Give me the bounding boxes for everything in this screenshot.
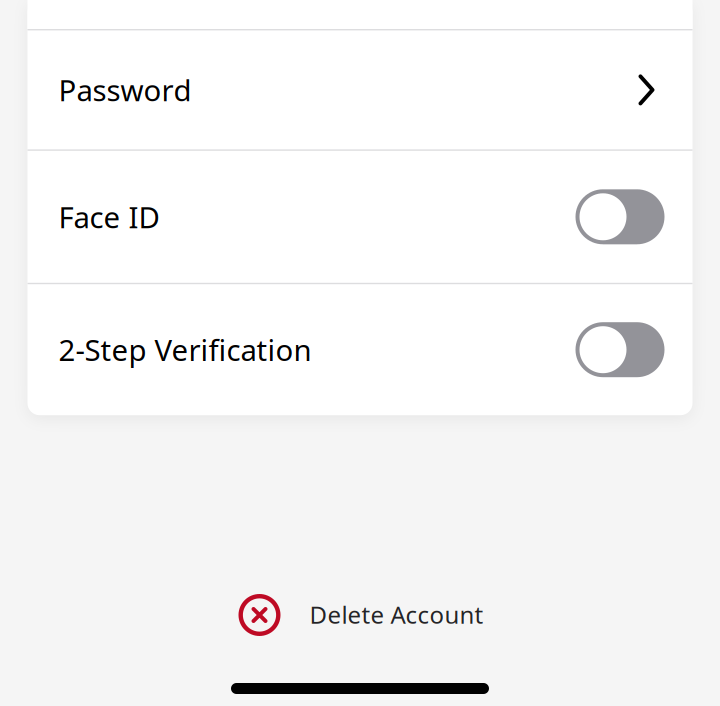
button[interactable]: Face ID [27, 151, 692, 283]
staticText: 2-Step Verification [58, 330, 311, 369]
staticText: Face ID [58, 197, 159, 236]
staticText: Delete Account [309, 599, 483, 630]
button[interactable]: 2-Step Verification [27, 284, 692, 415]
staticText: Password [58, 70, 191, 109]
button[interactable]: Password [27, 30, 692, 149]
button[interactable]: Delete Account [220, 583, 499, 646]
